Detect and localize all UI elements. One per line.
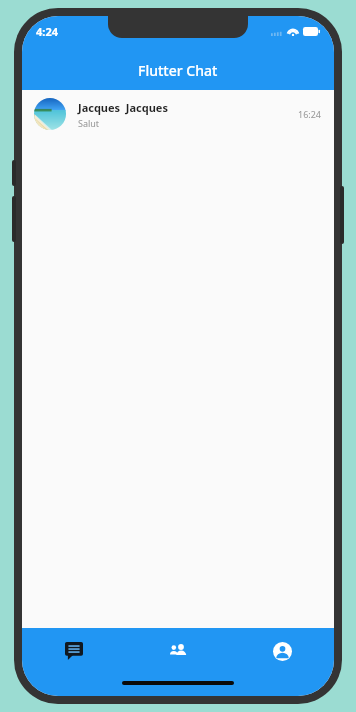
staticText: Jacques Jacques: [78, 100, 168, 115]
button[interactable]: Jacques Jacques: [22, 90, 334, 138]
button[interactable]: Groups: [126, 628, 230, 674]
button[interactable]: Chats: [22, 628, 126, 674]
staticText: Flutter Chat: [138, 61, 218, 80]
staticText: Salut: [78, 117, 100, 129]
button[interactable]: Profile: [230, 628, 334, 674]
staticText: 16:24: [298, 108, 322, 120]
staticText: 4:24: [36, 24, 58, 39]
